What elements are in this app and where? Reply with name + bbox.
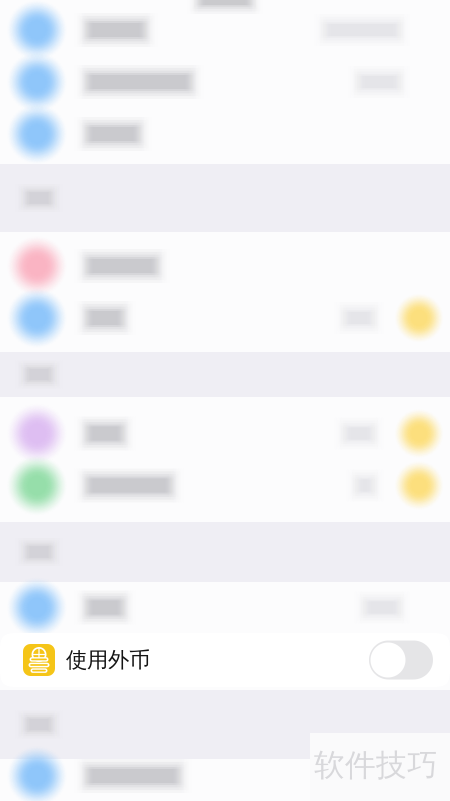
button[interactable]	[0, 750, 450, 801]
button[interactable]	[0, 581, 450, 633]
button[interactable]	[0, 407, 450, 459]
staticText: 软件技巧	[314, 746, 438, 784]
button[interactable]	[0, 459, 450, 511]
staticText: 使用外币	[66, 647, 150, 673]
button[interactable]	[0, 4, 450, 56]
button[interactable]	[0, 108, 450, 160]
button[interactable]	[0, 292, 450, 344]
button[interactable]	[0, 56, 450, 108]
button[interactable]: 使用外币	[0, 633, 450, 687]
button[interactable]	[0, 240, 450, 292]
